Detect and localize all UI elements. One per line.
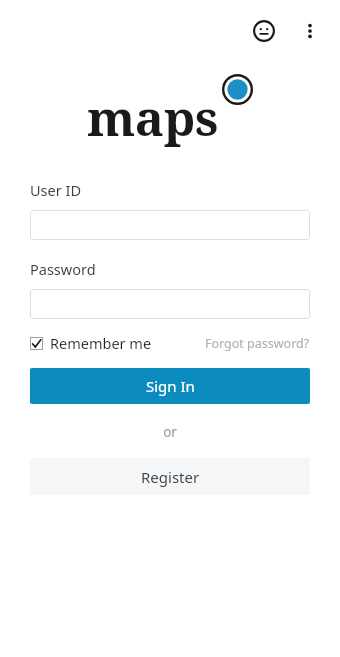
button[interactable]: Register	[30, 458, 310, 495]
button[interactable]: Help and feedback	[244, 11, 284, 51]
button[interactable]: Remember me	[30, 333, 152, 353]
staticText: or	[30, 423, 310, 441]
button[interactable]: Forgot password?	[205, 335, 310, 352]
staticText: Sign In	[146, 376, 195, 396]
staticText: Remember me	[50, 333, 152, 353]
staticText: User ID	[30, 180, 81, 200]
button[interactable]: Password input	[30, 289, 310, 319]
staticText: maps	[87, 84, 218, 151]
button[interactable]: More options	[290, 11, 330, 51]
button[interactable]: Sign In	[30, 368, 310, 404]
button[interactable]: User ID input	[30, 210, 310, 240]
staticText: Password	[30, 259, 96, 279]
staticText: Register	[141, 467, 200, 487]
